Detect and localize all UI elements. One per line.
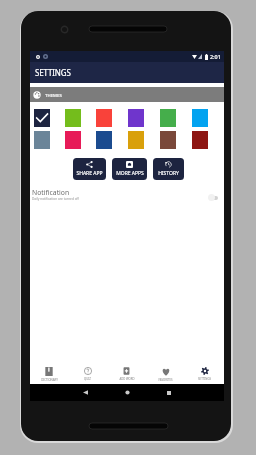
button[interactable] [96,109,128,127]
staticText: 2:01 [210,53,221,60]
button[interactable] [34,109,65,127]
staticText: HISTORY [158,170,179,177]
button[interactable] [65,109,96,127]
button[interactable] [96,131,128,149]
staticText: Daily notification are turned off [32,197,79,201]
button[interactable] [65,131,96,149]
button[interactable] [128,131,160,149]
button[interactable]: QUIZ [68,354,107,384]
button[interactable]: SHARE APP [73,158,106,180]
other: Home [125,390,130,395]
staticText: THEMES [45,92,62,98]
button[interactable]: SETTINGS [185,354,224,384]
button[interactable]: Notification [30,186,224,202]
button[interactable]: MORE APPS [112,158,147,180]
staticText: ADD WORD [119,377,135,381]
staticText: SETTINGS [198,377,211,381]
button[interactable] [34,131,65,149]
staticText: Notification [32,188,70,197]
button[interactable]: HISTORY [153,158,184,180]
button[interactable] [192,109,224,127]
button[interactable] [160,131,192,149]
staticText: DICTIONARY [41,378,58,382]
button[interactable] [160,109,192,127]
other: Back [83,390,88,395]
button[interactable] [128,109,160,127]
staticText: FAVORITES [158,378,173,382]
staticText: QUIZ [84,377,91,381]
button[interactable]: DICTIONARY [30,354,68,384]
staticText: MORE APPS [116,170,144,177]
button[interactable]: FAVORITES [146,354,185,384]
staticText: SHARE APP [76,170,103,177]
staticText: SETTINGS [35,67,71,78]
button[interactable]: ADD WORD [107,354,146,384]
button[interactable] [192,131,224,149]
